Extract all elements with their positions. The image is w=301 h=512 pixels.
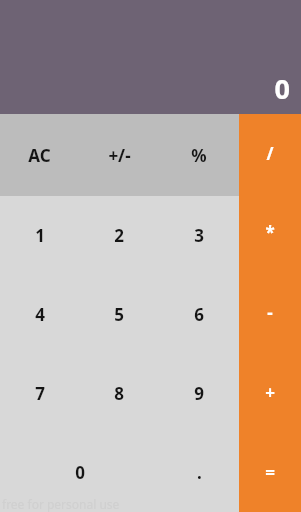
- button[interactable]: Equals: [239, 432, 301, 512]
- staticText: +/-: [108, 144, 131, 167]
- staticText: 9: [194, 382, 204, 405]
- staticText: 4: [35, 303, 45, 326]
- button[interactable]: 2: [79, 196, 159, 275]
- staticText: *: [265, 221, 275, 244]
- staticText: 0: [75, 461, 85, 484]
- staticText: 7: [35, 382, 45, 405]
- staticText: 2: [114, 224, 124, 247]
- staticText: /: [266, 142, 274, 165]
- staticText: 8: [114, 382, 124, 405]
- button[interactable]: 4: [0, 275, 79, 354]
- button[interactable]: 0: [0, 433, 159, 512]
- button[interactable]: 1: [0, 196, 79, 275]
- button[interactable]: %: [159, 114, 239, 196]
- button[interactable]: Add: [239, 352, 301, 432]
- staticText: 3: [194, 224, 204, 247]
- staticText: +: [265, 381, 275, 404]
- button[interactable]: Divide: [239, 114, 301, 193]
- button[interactable]: Subtract: [239, 272, 301, 352]
- button[interactable]: 7: [0, 354, 79, 433]
- button[interactable]: Decimal point: [159, 433, 239, 512]
- staticText: 1: [35, 224, 45, 247]
- button[interactable]: AC: [0, 114, 79, 196]
- staticText: 0: [274, 70, 290, 107]
- staticText: 5: [114, 303, 124, 326]
- button[interactable]: Multiply: [239, 193, 301, 272]
- staticText: %: [191, 144, 207, 167]
- button[interactable]: 9: [159, 354, 239, 433]
- button[interactable]: 6: [159, 275, 239, 354]
- staticText: 6: [194, 303, 204, 326]
- staticText: -: [267, 301, 273, 324]
- staticText: =: [265, 461, 275, 484]
- button[interactable]: 5: [79, 275, 159, 354]
- button[interactable]: 3: [159, 196, 239, 275]
- button[interactable]: +/-: [79, 114, 159, 196]
- button[interactable]: 8: [79, 354, 159, 433]
- staticText: .: [197, 461, 202, 484]
- staticText: AC: [28, 144, 51, 167]
